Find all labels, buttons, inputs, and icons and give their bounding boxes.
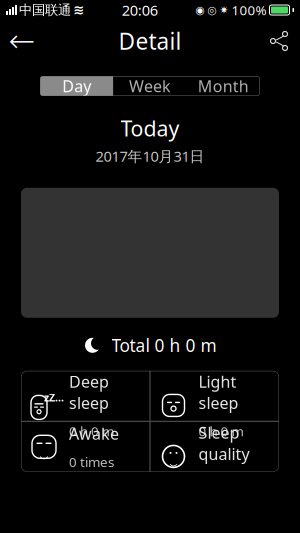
button[interactable]: Light sleep — [150, 371, 279, 421]
staticText: 0 h 0 m — [198, 422, 243, 440]
button[interactable]: ‿ — [150, 422, 279, 472]
staticText: Awake — [69, 423, 119, 444]
button[interactable]: Back — [0, 23, 44, 59]
button[interactable]: Week — [113, 76, 187, 96]
staticText: Detail — [118, 26, 181, 56]
staticText: Total 0 h 0 m — [111, 334, 216, 357]
staticText: 20:06 — [122, 0, 158, 20]
staticText: Week — [129, 75, 171, 97]
staticText: 2017年10月31日 — [95, 146, 204, 166]
staticText: 0 times — [69, 453, 114, 471]
staticText: Light sleep — [198, 371, 238, 413]
button[interactable]: Day — [40, 76, 113, 96]
staticText: Day — [62, 75, 91, 97]
staticText: 0 h 0 m — [69, 422, 114, 440]
staticText: ‿ — [39, 441, 48, 460]
staticText: Month — [198, 75, 249, 97]
staticText: 100% — [231, 1, 266, 19]
staticText: ‿ — [169, 450, 177, 467]
staticText: Today — [120, 114, 179, 142]
staticText: zZ... — [44, 390, 64, 404]
button[interactable]: zZ... — [21, 371, 149, 421]
staticText: ◎ — [207, 4, 216, 16]
staticText: ✷ — [219, 4, 228, 16]
staticText: Deep sleep — [69, 371, 109, 413]
staticText: 中国联通 — [19, 2, 71, 18]
button[interactable]: Month — [187, 76, 260, 96]
button[interactable]: ‿ — [21, 422, 149, 472]
staticText: ≋ — [73, 2, 84, 17]
staticText: Sleep quality — [198, 422, 249, 464]
staticText: ◉ — [195, 4, 204, 16]
staticText: ← — [8, 23, 35, 59]
button[interactable]: Share — [256, 23, 300, 59]
